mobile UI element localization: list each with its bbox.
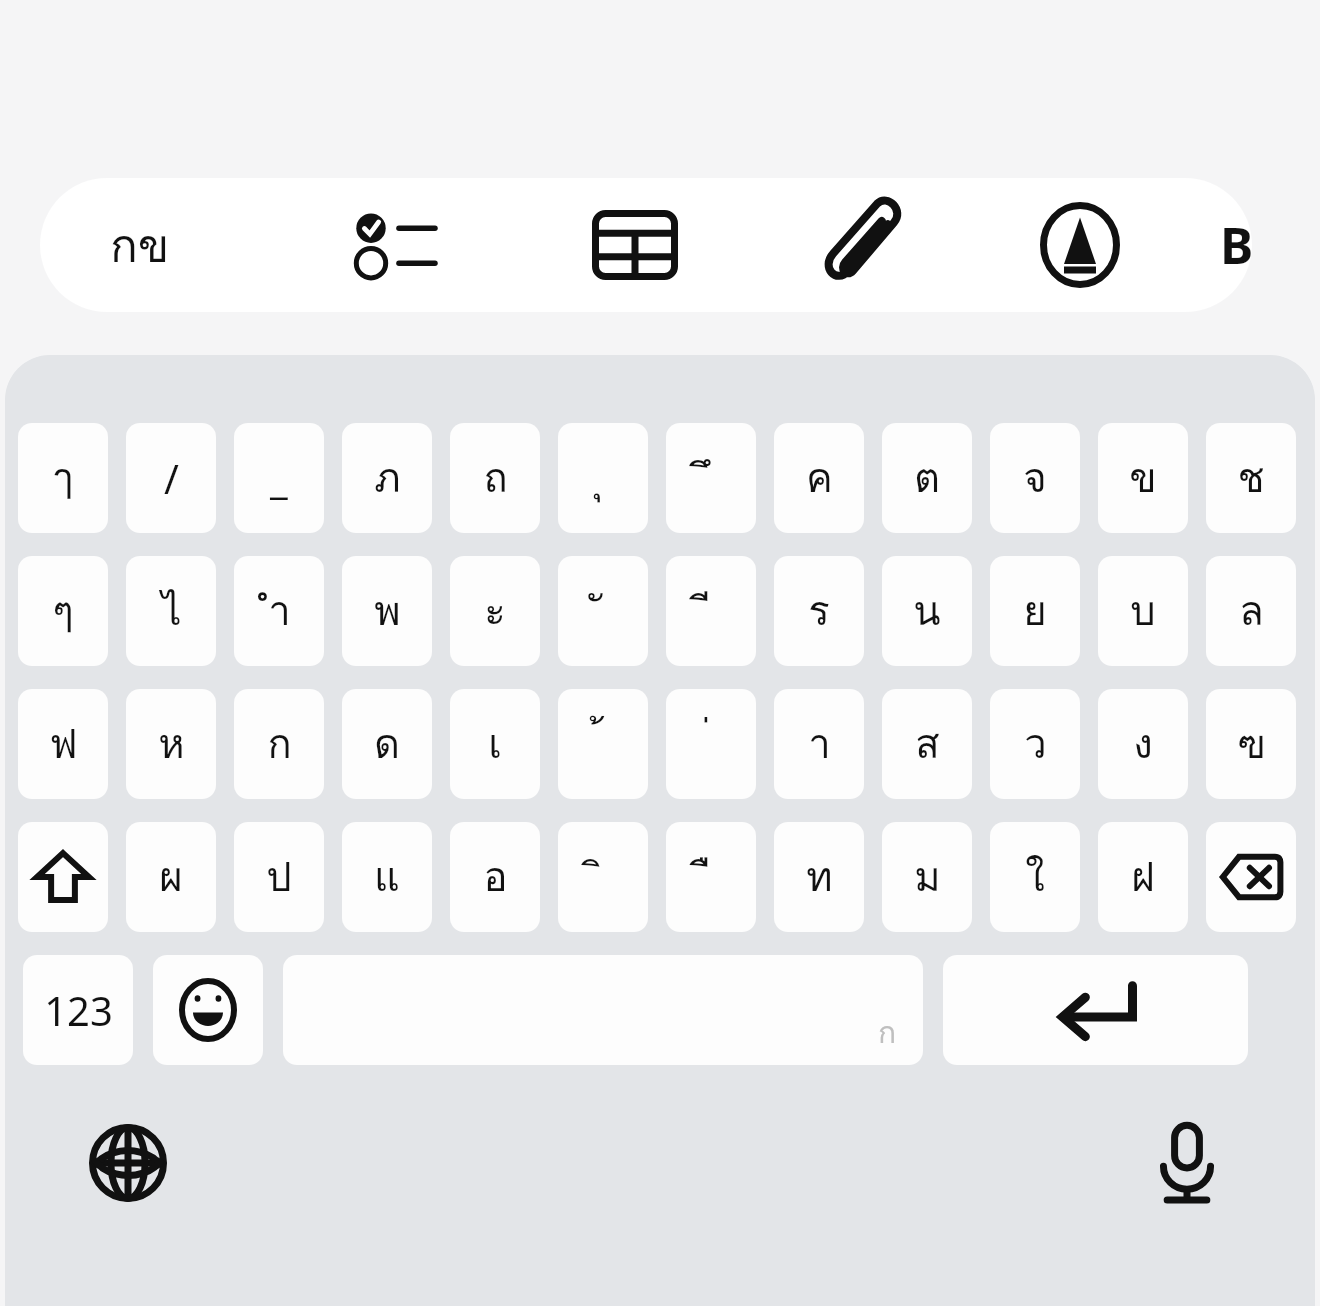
staticText: ม <box>914 845 941 909</box>
button[interactable]: ย <box>990 556 1080 666</box>
button[interactable]: ง <box>1098 689 1188 799</box>
button[interactable]: กข <box>70 178 210 312</box>
button[interactable]: ช <box>1206 423 1296 533</box>
button[interactable]: ม <box>882 822 972 932</box>
button[interactable]: ิ <box>558 822 648 932</box>
staticText: อ <box>483 845 508 909</box>
staticText: ด <box>374 712 400 776</box>
button[interactable]: ั <box>558 556 648 666</box>
staticText: ไ <box>161 579 182 643</box>
staticText: 123 <box>44 983 113 1037</box>
button[interactable]: ใ <box>990 822 1080 932</box>
staticText: _ <box>270 451 288 505</box>
button[interactable]: ้ <box>558 689 648 799</box>
staticText: า <box>808 712 831 776</box>
staticText: B <box>1220 211 1252 279</box>
staticText: ย <box>1023 579 1047 643</box>
staticText: ส <box>915 712 940 776</box>
button[interactable]: แ <box>342 822 432 932</box>
button[interactable]: Shift <box>18 822 108 932</box>
button[interactable]: ฃ <box>1206 689 1296 799</box>
button[interactable]: พ <box>342 556 432 666</box>
button[interactable]: ำ <box>234 556 324 666</box>
button[interactable]: Checklist <box>330 178 460 312</box>
button[interactable]: ป <box>234 822 324 932</box>
staticText: ำ <box>268 579 291 643</box>
button[interactable]: ฝ <box>1098 822 1188 932</box>
staticText: / <box>164 451 179 505</box>
button[interactable]: ๆ <box>18 556 108 666</box>
staticText: ภ <box>374 446 401 510</box>
button[interactable]: จ <box>990 423 1080 533</box>
button[interactable]: Bold <box>1220 178 1252 312</box>
staticText: เ <box>488 712 502 776</box>
button[interactable]: ื <box>666 822 756 932</box>
button[interactable]: ส <box>882 689 972 799</box>
button[interactable]: Enter <box>943 955 1248 1065</box>
button[interactable]: น <box>882 556 972 666</box>
button[interactable]: ะ <box>450 556 540 666</box>
staticText: ต <box>914 446 940 510</box>
staticText: ฝ <box>1131 845 1155 909</box>
staticText: ข <box>1129 446 1157 510</box>
staticText: ผ <box>159 845 183 909</box>
staticText: ป <box>266 845 292 909</box>
button[interactable]: ต <box>882 423 972 533</box>
staticText: แ <box>374 845 400 909</box>
staticText: ใ <box>1025 845 1045 909</box>
button[interactable]: ๅ <box>18 423 108 533</box>
button[interactable]: ถ <box>450 423 540 533</box>
staticText: ๆ <box>52 579 74 643</box>
staticText: ห <box>158 712 185 776</box>
staticText: ค <box>806 446 833 510</box>
button[interactable]: ห <box>126 689 216 799</box>
button[interactable]: 123 <box>23 955 133 1065</box>
staticText: ล <box>1239 579 1264 643</box>
staticText: ก <box>878 1009 897 1057</box>
button[interactable]: ท <box>774 822 864 932</box>
button[interactable]: ค <box>774 423 864 533</box>
staticText: น <box>913 579 941 643</box>
button[interactable]: ึ <box>666 423 756 533</box>
staticText: ร <box>808 579 830 643</box>
staticText: ก <box>267 712 292 776</box>
staticText: พ <box>374 579 401 643</box>
button[interactable]: / <box>126 423 216 533</box>
staticText: ว <box>1024 712 1047 776</box>
button[interactable]: บ <box>1098 556 1188 666</box>
button[interactable]: _ <box>234 423 324 533</box>
button[interactable]: ล <box>1206 556 1296 666</box>
button[interactable]: ่ <box>666 689 756 799</box>
staticText: ฃ <box>1237 712 1266 776</box>
button[interactable]: Insert table <box>570 178 700 312</box>
button[interactable]: ฟ <box>18 689 108 799</box>
button[interactable]: ว <box>990 689 1080 799</box>
staticText: ช <box>1237 446 1265 510</box>
button[interactable]: Emoji <box>153 955 263 1065</box>
staticText: กข <box>110 209 170 282</box>
button[interactable]: เ <box>450 689 540 799</box>
button[interactable]: ร <box>774 556 864 666</box>
staticText: ง <box>1133 712 1153 776</box>
button[interactable]: ภ <box>342 423 432 533</box>
button[interactable]: อ <box>450 822 540 932</box>
button[interactable]: Change language <box>78 1113 178 1213</box>
button[interactable]: ก <box>234 689 324 799</box>
button[interactable]: ุ <box>558 423 648 533</box>
staticText: ะ <box>484 579 506 643</box>
button[interactable]: ี <box>666 556 756 666</box>
button[interactable]: Backspace <box>1206 822 1296 932</box>
staticText: ฟ <box>49 712 78 776</box>
button[interactable]: Attach file <box>800 178 930 312</box>
button[interactable]: Draw <box>1015 178 1145 312</box>
button[interactable]: ด <box>342 689 432 799</box>
button[interactable]: ผ <box>126 822 216 932</box>
staticText: ถ <box>483 446 508 510</box>
staticText: ท <box>806 845 833 909</box>
button[interactable]: ไ <box>126 556 216 666</box>
button[interactable]: า <box>774 689 864 799</box>
button[interactable]: ข <box>1098 423 1188 533</box>
button[interactable]: Voice input <box>1137 1113 1237 1213</box>
staticText: บ <box>1130 579 1156 643</box>
